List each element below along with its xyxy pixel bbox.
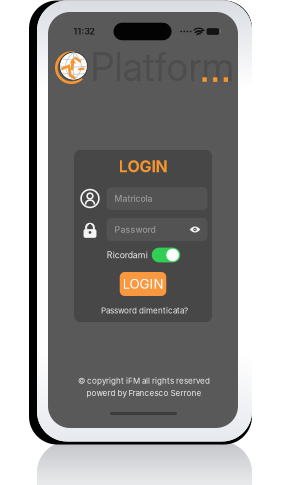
button[interactable]: Password xyxy=(106,218,207,241)
button[interactable]: Matricola xyxy=(106,187,207,210)
staticText: Ricordami xyxy=(107,250,148,260)
staticText: Password dimenticata? xyxy=(101,306,188,315)
staticText: LOGIN xyxy=(122,276,163,292)
staticText: Matricola xyxy=(114,193,152,204)
button[interactable]: Ricordami xyxy=(107,245,180,264)
staticText: 11:32 xyxy=(73,26,94,37)
button[interactable]: Password dimenticata? xyxy=(98,303,191,318)
staticText: LOGIN xyxy=(118,157,167,176)
staticText: Platform xyxy=(90,44,234,90)
staticText: © copyright iFM all rights reserved xyxy=(78,376,210,386)
button[interactable]: LOGIN xyxy=(120,272,166,296)
staticText: Password xyxy=(114,224,155,235)
staticText: powerd by Francesco Serrone xyxy=(86,388,201,398)
